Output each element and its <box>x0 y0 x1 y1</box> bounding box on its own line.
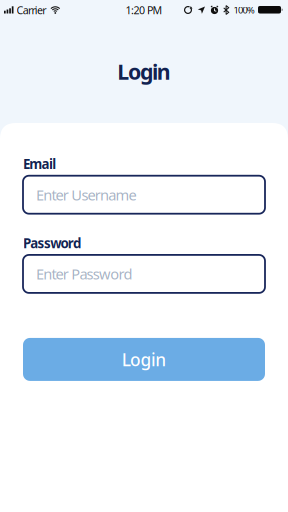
button[interactable]: Login <box>23 338 265 381</box>
staticText: Password <box>23 234 81 252</box>
staticText: Enter Password <box>36 264 133 284</box>
button[interactable]: Enter Password <box>23 255 265 293</box>
staticText: Enter Username <box>36 185 137 204</box>
staticText: Email <box>23 155 56 173</box>
staticText: Login <box>122 348 166 371</box>
staticText: 1:20 PM <box>125 3 162 17</box>
staticText: Login <box>117 57 171 86</box>
staticText: Carrier <box>16 3 46 17</box>
staticText: 100% <box>233 4 255 16</box>
button[interactable]: Enter Username <box>23 176 265 214</box>
